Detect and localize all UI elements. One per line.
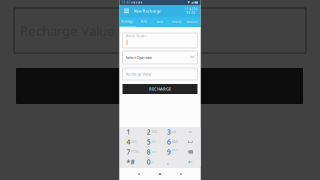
button[interactable]: 6 <box>160 137 180 147</box>
button[interactable]: 2 <box>140 127 160 137</box>
staticText: DEF <box>172 130 176 134</box>
staticText: 9 <box>167 148 171 156</box>
staticText: History <box>172 20 181 23</box>
staticText: 1 <box>126 128 130 136</box>
staticText: Mobile Number <box>125 34 147 38</box>
button[interactable]: Store <box>152 19 168 25</box>
staticText: RECHARGE <box>149 86 171 92</box>
staticText: TUV <box>152 150 157 154</box>
button[interactable]: RECHARGE <box>122 84 197 94</box>
button[interactable]: 5 <box>140 137 160 147</box>
staticText: 84.00 <box>186 11 195 15</box>
button[interactable]: 1 <box>119 127 140 137</box>
button[interactable]: Account <box>184 19 200 25</box>
button[interactable]: Recents <box>180 173 182 175</box>
staticText: WXYZ <box>172 148 179 156</box>
staticText: Recharge <box>121 20 134 23</box>
button[interactable]: 7 <box>119 147 140 157</box>
button[interactable]: Key <box>180 157 200 167</box>
staticText: Recharge Value <box>125 71 151 77</box>
staticText: JKL <box>152 140 156 144</box>
staticText: *# <box>126 158 134 166</box>
button[interactable]: Bills <box>136 19 152 25</box>
staticText: GHI <box>131 140 136 144</box>
staticText: 6 <box>167 138 171 146</box>
staticText: 10:46 <box>121 1 130 4</box>
staticText: 3 <box>167 128 171 136</box>
button[interactable]: Key <box>180 127 200 137</box>
staticText: 0 <box>147 158 151 166</box>
staticText: 7 <box>126 148 130 156</box>
staticText: 2 <box>147 128 151 136</box>
staticText: ₹1,4200 <box>184 7 197 11</box>
staticText: 4 <box>126 138 130 146</box>
staticText: MNO <box>172 140 178 144</box>
button[interactable]: 9 <box>160 147 180 157</box>
staticText: 8 <box>147 148 151 156</box>
staticText: + <box>152 160 154 164</box>
staticText: | <box>125 38 128 45</box>
staticText: Recharge Value <box>20 22 115 39</box>
button[interactable]: *# <box>119 157 140 167</box>
staticText: New Recharge <box>133 8 160 14</box>
staticText: Select Operator <box>125 55 152 60</box>
button[interactable]: 4 <box>119 137 140 147</box>
staticText: 5 <box>147 138 151 146</box>
button[interactable]: History <box>168 19 184 25</box>
button[interactable]: Key <box>180 147 200 157</box>
staticText: PQRS <box>131 150 138 154</box>
staticText: . <box>167 158 169 166</box>
button[interactable]: 0 <box>140 157 160 167</box>
button[interactable]: 3 <box>160 127 180 137</box>
staticText: Bills <box>141 20 147 23</box>
button[interactable]: 8 <box>140 147 160 157</box>
button[interactable]: Key <box>180 137 200 147</box>
staticText: ABC <box>152 130 158 134</box>
button[interactable]: . <box>160 157 180 167</box>
button[interactable]: Menu <box>119 5 133 17</box>
button[interactable]: Recharge <box>119 19 136 25</box>
staticText: Account <box>187 20 198 23</box>
button[interactable]: Back <box>138 173 140 175</box>
staticText: Store <box>156 20 163 23</box>
